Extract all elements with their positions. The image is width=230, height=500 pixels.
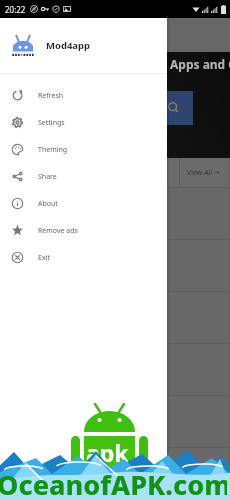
button[interactable]: Poweramp Music v3.0.1633 [Mod] (0, 395, 227, 447)
staticText: Exit (38, 253, 50, 263)
button[interactable]: Nova Launcher [VIP] (0, 343, 227, 395)
staticText: OceanofAPK.com (0, 466, 227, 500)
button[interactable]: Refresh (0, 82, 167, 109)
staticText: View All → (187, 168, 220, 178)
staticText: Refresh (38, 91, 64, 101)
button[interactable]: Theming (0, 136, 167, 163)
staticText: Share (38, 172, 57, 182)
button[interactable]: Share (0, 163, 167, 190)
staticText: Settings (38, 118, 65, 128)
staticText: 20:22 (5, 4, 26, 15)
button[interactable]: Remove ads (0, 217, 167, 244)
staticText: Best Mod Apps and Games (111, 56, 230, 72)
button[interactable]: View All → (0, 158, 227, 187)
button[interactable]: Exit (0, 244, 167, 271)
staticText: About (38, 199, 58, 209)
staticText: Remove ads (38, 226, 78, 236)
button[interactable]: Minecraft Pocket (0, 239, 227, 291)
button[interactable]: Settings (0, 109, 167, 136)
button[interactable] (0, 18, 230, 52)
staticText: Substratum theme v25... (6, 469, 81, 478)
button[interactable]: Spotify Premium v1 (Pro) (0, 291, 227, 343)
staticText: Minecraft Pocket (6, 261, 58, 270)
staticText: Poweramp Music v3.0.1633 [Mod] (6, 417, 109, 426)
button[interactable]: Substratum theme v25... (0, 447, 227, 499)
button[interactable]: Search (140, 91, 193, 125)
staticText: Theming (38, 145, 68, 155)
staticText: Mod4app (46, 39, 91, 52)
button[interactable]: Mod4app (0, 18, 167, 73)
button[interactable]: About (0, 190, 167, 217)
button[interactable]: Music Player (Mod) (0, 187, 227, 239)
staticText: apk (86, 437, 129, 468)
